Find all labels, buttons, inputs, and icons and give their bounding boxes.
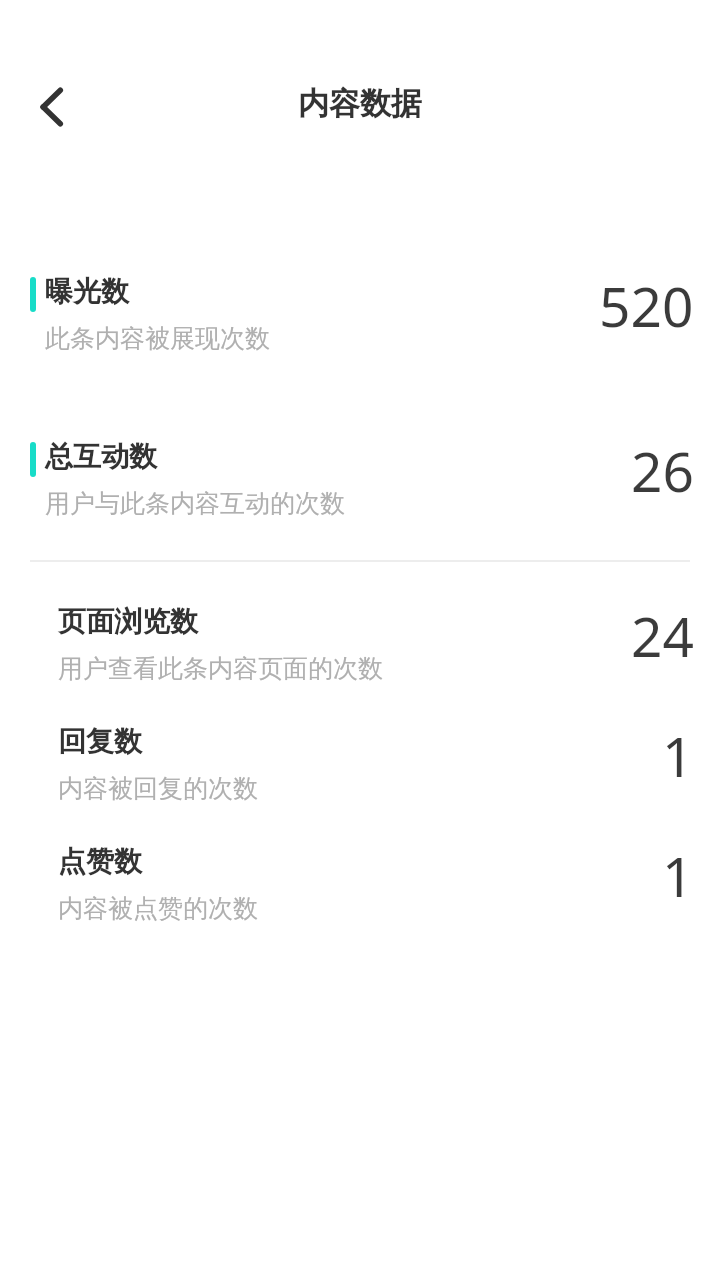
- button[interactable]: 页面浏览数: [0, 604, 720, 700]
- staticText: 520: [599, 268, 694, 343]
- button[interactable]: 回复数: [0, 724, 720, 820]
- staticText: 总互动数: [45, 439, 157, 474]
- staticText: 用户与此条内容互动的次数: [45, 488, 345, 519]
- staticText: 内容被回复的次数: [58, 773, 258, 804]
- staticText: 1: [662, 838, 694, 913]
- staticText: 点赞数: [58, 844, 142, 879]
- staticText: 页面浏览数: [58, 604, 198, 639]
- staticText: 内容被点赞的次数: [58, 893, 258, 924]
- staticText: 26: [631, 433, 694, 508]
- staticText: 内容数据: [298, 84, 422, 123]
- button[interactable]: 总互动数: [0, 439, 720, 535]
- button[interactable]: 曝光数: [0, 274, 720, 370]
- staticText: 此条内容被展现次数: [45, 323, 270, 354]
- staticText: 曝光数: [45, 274, 129, 309]
- button[interactable]: Back: [22, 77, 82, 137]
- staticText: 1: [662, 718, 694, 793]
- staticText: 24: [631, 598, 694, 673]
- staticText: 用户查看此条内容页面的次数: [58, 653, 383, 684]
- staticText: 回复数: [58, 724, 142, 759]
- button[interactable]: 点赞数: [0, 844, 720, 940]
